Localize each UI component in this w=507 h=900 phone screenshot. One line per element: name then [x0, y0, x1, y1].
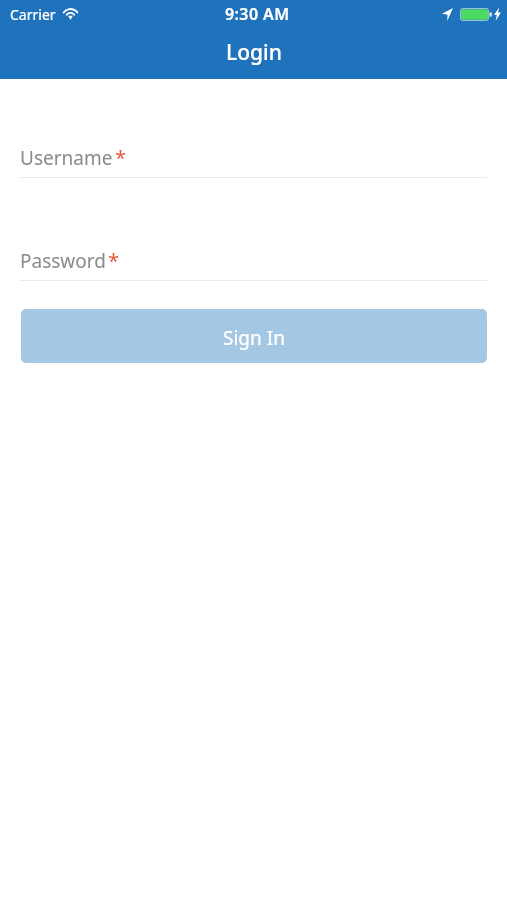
staticText: Password — [20, 248, 106, 274]
staticText: Username — [20, 145, 113, 171]
button[interactable]: Sign In — [21, 309, 487, 363]
staticText: * — [115, 144, 127, 171]
other: Location — [442, 8, 453, 21]
other: Battery full — [460, 8, 492, 21]
staticText: Carrier — [10, 5, 56, 24]
staticText: Sign In — [223, 325, 285, 351]
staticText: * — [108, 247, 120, 274]
button[interactable]: Password — [20, 248, 487, 281]
staticText: Login — [226, 38, 282, 67]
other: Charging — [494, 7, 501, 21]
other: Wi-Fi — [63, 8, 78, 20]
button[interactable]: Username — [20, 145, 487, 178]
staticText: 9:30 AM — [225, 3, 290, 25]
